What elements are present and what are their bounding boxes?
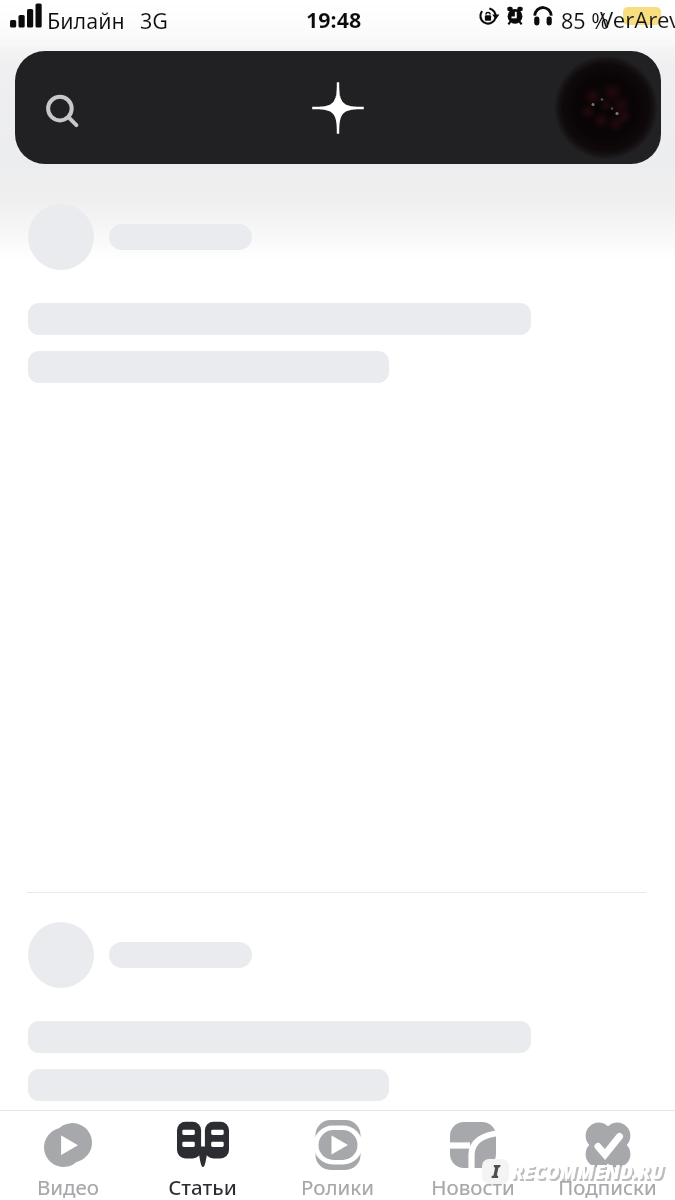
staticText: 19:48 (306, 5, 362, 34)
staticText: Билайн (47, 6, 125, 35)
button[interactable]: Новости (405, 1111, 540, 1200)
button[interactable]: Статьи (135, 1111, 270, 1200)
staticText: VerArev (600, 4, 675, 34)
button[interactable]: Search (35, 83, 85, 133)
staticText: RECOMMEND.RU (513, 1161, 666, 1187)
button[interactable]: Подписки (540, 1111, 675, 1200)
staticText: RECOMMEND.RU (511, 1159, 664, 1185)
button[interactable]: Assistant (303, 73, 373, 143)
button[interactable]: Видео (0, 1111, 135, 1200)
staticText: I (492, 1159, 500, 1184)
staticText: Подписки (558, 1173, 657, 1200)
button[interactable]: Profile (548, 51, 661, 164)
staticText: Видео (37, 1173, 99, 1200)
staticText: Статьи (168, 1173, 237, 1200)
staticText: Новости (431, 1173, 515, 1200)
staticText: 3G (140, 6, 168, 35)
staticText: 85 % (561, 6, 610, 35)
button[interactable]: Search (15, 51, 661, 164)
button[interactable]: Ролики (270, 1111, 405, 1200)
staticText: Ролики (301, 1173, 374, 1200)
